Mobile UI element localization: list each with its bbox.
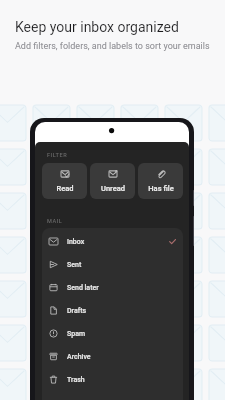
button[interactable]: Sent [42,253,183,276]
staticText: Archive [67,353,91,361]
staticText: Read [56,184,74,193]
button[interactable]: Trash [42,368,183,391]
button[interactable]: Send later [42,276,183,299]
staticText: Trash [67,376,85,384]
button[interactable]: Drafts [42,299,183,322]
staticText: Add filters, folders, and labels to sort… [15,41,210,52]
staticText: Keep your inbox organized [15,19,179,35]
button[interactable]: Read [42,163,87,199]
button[interactable]: Spam [42,322,183,345]
staticText: Inbox [67,238,85,246]
staticText: Unread [101,184,125,193]
button[interactable]: Has file [138,163,183,199]
staticText: Sent [67,261,82,269]
staticText: Drafts [67,307,87,315]
button[interactable]: Inbox [42,230,183,253]
staticText: Has file [148,184,174,193]
button[interactable]: Archive [42,345,183,368]
staticText: Spam [67,330,86,338]
staticText: FILTER [47,152,68,159]
button[interactable]: Unread [90,163,135,199]
staticText: Send later [67,284,99,292]
staticText: MAIL [47,218,63,225]
